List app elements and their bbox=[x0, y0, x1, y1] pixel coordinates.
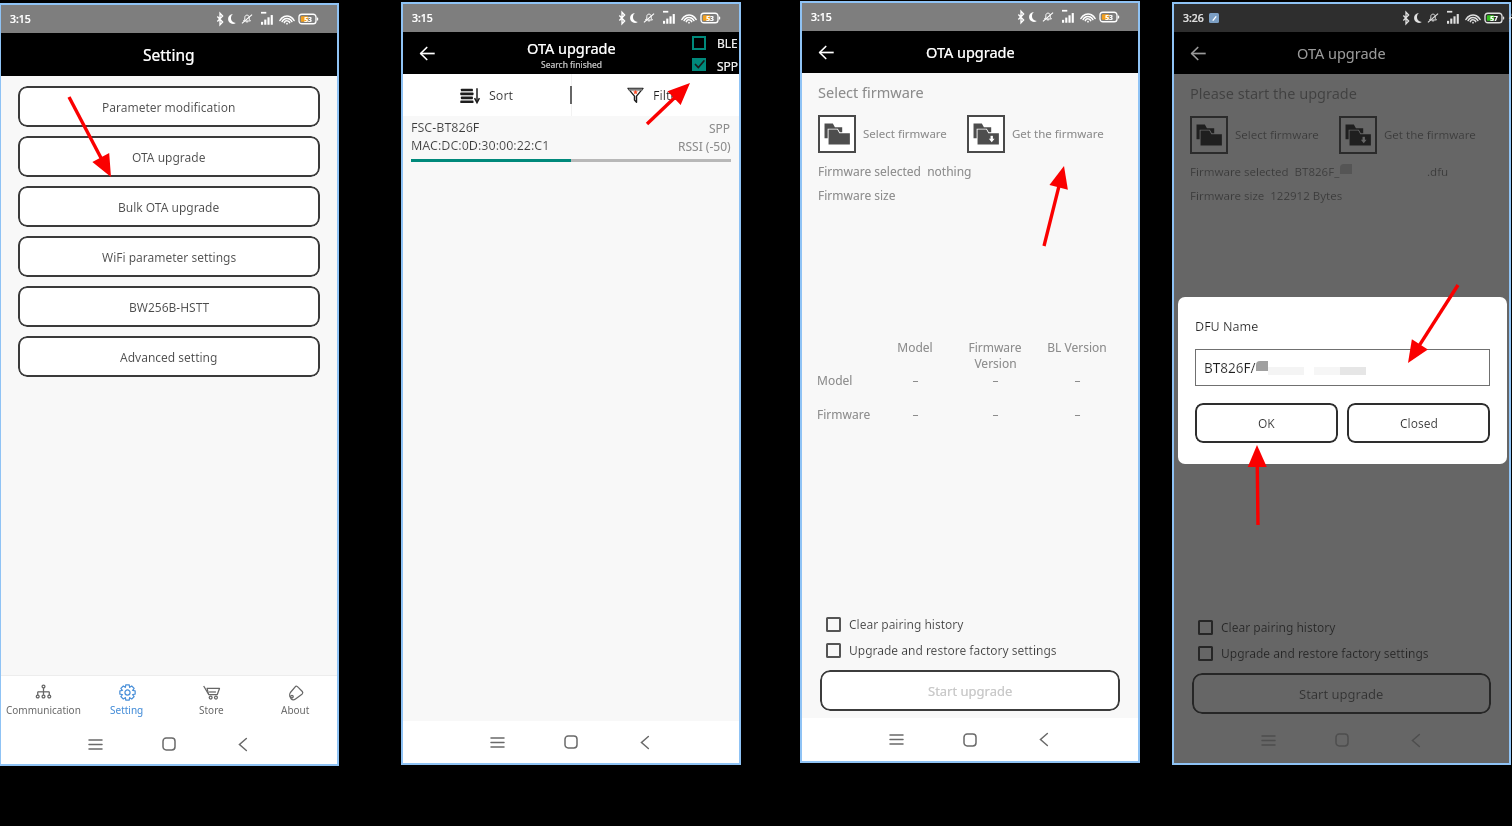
staticText: SPP bbox=[717, 58, 739, 71]
staticText: FSC-BT826F bbox=[411, 119, 480, 136]
button[interactable]: Back bbox=[1027, 718, 1061, 761]
staticText: Firmware selected BT826F_ bbox=[1190, 164, 1340, 180]
staticText: Advanced setting bbox=[120, 349, 218, 365]
button[interactable]: Bulk OTA upgrade bbox=[18, 186, 320, 227]
staticText: DFU Name bbox=[1195, 318, 1259, 335]
button[interactable]: Parameter modification bbox=[18, 86, 320, 127]
staticText: Firmware selected nothing bbox=[818, 163, 972, 179]
button[interactable]: Advanced setting bbox=[18, 336, 320, 377]
staticText: Firmware bbox=[968, 339, 1022, 355]
staticText: Start upgrade bbox=[928, 682, 1013, 700]
staticText: BT826F/ bbox=[1204, 359, 1256, 377]
button[interactable]: Recent apps bbox=[78, 724, 112, 764]
staticText: Closed bbox=[1400, 415, 1438, 431]
button[interactable]: Communication bbox=[1, 676, 85, 724]
staticText: Version bbox=[974, 355, 1017, 371]
staticText: BL Version bbox=[1047, 339, 1107, 355]
staticText: BLE bbox=[717, 35, 738, 51]
button[interactable]: Home bbox=[1325, 717, 1359, 763]
staticText: OK bbox=[1258, 415, 1275, 431]
staticText: Store bbox=[199, 703, 224, 717]
staticText: Get the firmware bbox=[1012, 126, 1104, 142]
staticText: 53 bbox=[301, 15, 315, 24]
staticText: Model bbox=[897, 339, 933, 355]
staticText: RSSI (-50) bbox=[678, 138, 731, 154]
staticText: Select firmware bbox=[863, 126, 947, 142]
button[interactable]: Select firmware bbox=[818, 115, 947, 153]
staticText: Search finished bbox=[541, 59, 603, 71]
staticText: Get the firmware bbox=[1384, 127, 1476, 143]
button[interactable]: BT826F/ bbox=[1204, 349, 1481, 386]
button[interactable]: Store bbox=[169, 676, 253, 724]
button[interactable]: Home bbox=[554, 721, 588, 763]
staticText: SPP bbox=[709, 120, 731, 136]
button[interactable]: OK bbox=[1195, 403, 1338, 443]
staticText: Setting bbox=[110, 703, 144, 717]
button[interactable]: Upgrade and restore factory settings bbox=[820, 638, 1120, 662]
button[interactable]: FSC-BT826F bbox=[403, 116, 739, 162]
button[interactable]: Back bbox=[412, 38, 442, 68]
button[interactable]: Home bbox=[953, 718, 987, 761]
button[interactable]: Closed bbox=[1347, 403, 1490, 443]
button[interactable]: Back bbox=[1183, 38, 1213, 68]
staticText: Clear pairing history bbox=[849, 616, 964, 632]
staticText: OTA upgrade bbox=[926, 42, 1015, 62]
button[interactable]: Start upgrade bbox=[820, 670, 1120, 711]
button[interactable]: Sort bbox=[403, 74, 571, 116]
staticText: BW256B-HSTT bbox=[129, 299, 210, 315]
button[interactable]: WiFi parameter settings bbox=[18, 236, 320, 277]
staticText: – bbox=[1074, 372, 1081, 388]
button[interactable]: Home bbox=[152, 724, 186, 764]
button[interactable]: Back bbox=[811, 37, 841, 67]
staticText: Filter bbox=[653, 87, 683, 104]
staticText: – bbox=[1074, 406, 1081, 422]
button[interactable]: Back bbox=[628, 721, 662, 763]
button[interactable]: Select firmware bbox=[1190, 116, 1319, 154]
staticText: Select firmware bbox=[818, 82, 924, 102]
button[interactable]: Start upgrade bbox=[1192, 673, 1491, 714]
button[interactable]: Upgrade and restore factory settings bbox=[1192, 641, 1491, 665]
staticText: Clear pairing history bbox=[1221, 619, 1336, 635]
staticText: Firmware bbox=[817, 406, 871, 422]
button[interactable]: OTA upgrade bbox=[18, 136, 320, 177]
staticText: WiFi parameter settings bbox=[102, 249, 237, 265]
staticText: Start upgrade bbox=[1299, 685, 1384, 703]
button[interactable]: SPP bbox=[692, 55, 739, 74]
button[interactable]: Recent apps bbox=[1251, 717, 1285, 763]
staticText: 53 bbox=[1102, 13, 1116, 22]
staticText: – bbox=[912, 406, 919, 422]
staticText: 3:15 bbox=[811, 10, 832, 24]
staticText: Select firmware bbox=[1235, 127, 1319, 143]
button[interactable]: BW256B-HSTT bbox=[18, 286, 320, 327]
button[interactable]: Recent apps bbox=[879, 718, 913, 761]
staticText: 3:15 bbox=[10, 12, 31, 26]
button[interactable]: Filter bbox=[571, 74, 739, 116]
staticText: .dfu bbox=[1427, 164, 1449, 180]
button[interactable]: About bbox=[253, 676, 337, 724]
button[interactable]: Clear pairing history bbox=[1192, 615, 1491, 639]
button[interactable]: Clear pairing history bbox=[820, 612, 1120, 636]
button[interactable]: Get the firmware bbox=[1339, 116, 1476, 154]
staticText: Firmware size bbox=[818, 187, 896, 203]
staticText: Please start the upgrade bbox=[1190, 83, 1357, 103]
staticText: – bbox=[912, 372, 919, 388]
button[interactable]: BLE bbox=[692, 32, 738, 54]
staticText: OTA upgrade bbox=[132, 149, 206, 165]
button[interactable]: Back bbox=[226, 724, 260, 764]
button[interactable]: Get the firmware bbox=[967, 115, 1104, 153]
staticText: Parameter modification bbox=[102, 99, 236, 115]
button[interactable]: Setting bbox=[85, 676, 169, 724]
staticText: Upgrade and restore factory settings bbox=[1221, 645, 1429, 661]
button[interactable]: Recent apps bbox=[480, 721, 514, 763]
staticText: OTA upgrade bbox=[1297, 43, 1386, 63]
staticText: Model bbox=[817, 372, 853, 388]
staticText: Firmware size 122912 Bytes bbox=[1190, 188, 1343, 204]
staticText: MAC:DC:0D:30:00:22:C1 bbox=[411, 137, 550, 154]
staticText: Setting bbox=[143, 44, 195, 65]
staticText: Sort bbox=[489, 87, 514, 104]
staticText: 57 bbox=[1487, 14, 1501, 23]
staticText: 3:15 bbox=[412, 11, 433, 25]
staticText: Bulk OTA upgrade bbox=[118, 199, 220, 215]
staticText: About bbox=[281, 703, 310, 717]
